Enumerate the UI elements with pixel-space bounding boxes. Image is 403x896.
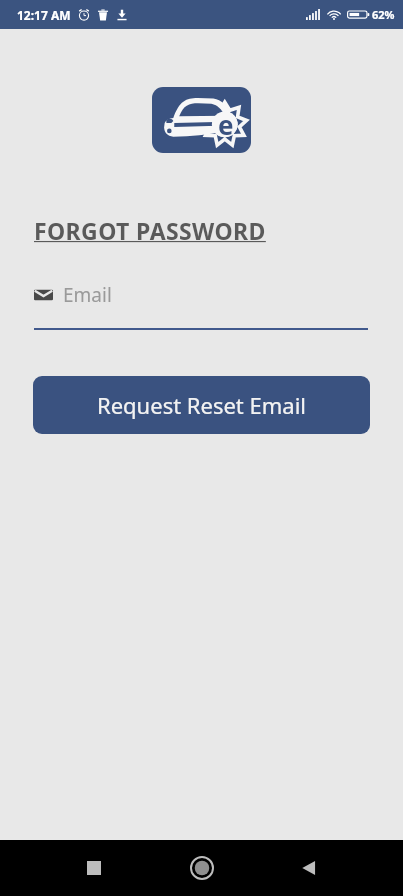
staticText: 12:17 AM <box>17 7 71 23</box>
staticText: Email <box>63 282 112 308</box>
staticText: FORGOT PASSWORD <box>34 215 266 246</box>
staticText: e <box>218 107 234 142</box>
staticText: 62% <box>372 7 395 22</box>
button[interactable]: Recent apps <box>70 844 118 892</box>
button[interactable]: Back <box>285 844 333 892</box>
button[interactable]: Home <box>178 844 226 892</box>
staticText: Request Reset Email <box>97 390 307 420</box>
button[interactable]: Request Reset Email <box>33 376 370 434</box>
button[interactable]: Email <box>34 282 368 330</box>
